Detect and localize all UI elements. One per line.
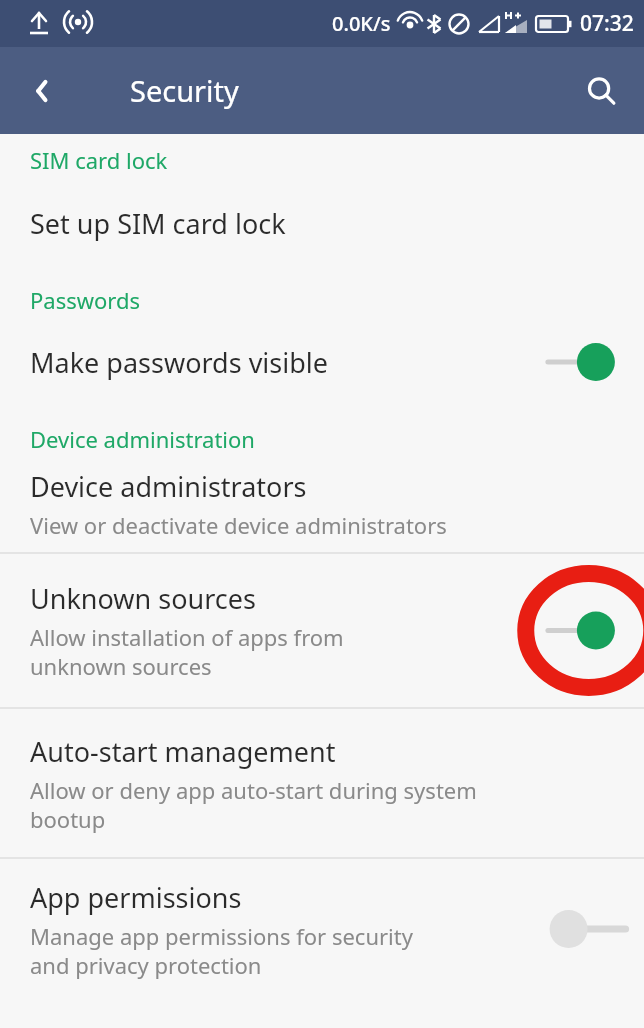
- staticText: View or deactivate device administrators: [30, 510, 447, 540]
- button[interactable]: Auto-start management: [0, 709, 644, 857]
- button[interactable]: Toggle off: [514, 859, 644, 999]
- button[interactable]: Set up SIM card lock: [0, 177, 644, 269]
- staticText: Unknown sources: [30, 580, 256, 617]
- staticText: Auto-start management: [30, 733, 336, 770]
- button[interactable]: Back: [14, 62, 72, 120]
- staticText: Device administration: [30, 424, 644, 454]
- staticText: Allow or deny app auto-start during syst…: [30, 775, 477, 834]
- staticText: SIM card lock: [30, 145, 644, 175]
- staticText: Make passwords visible: [30, 344, 329, 381]
- button[interactable]: Device administrators: [0, 456, 644, 552]
- button[interactable]: Unknown sources: [0, 554, 644, 707]
- staticText: Allow installation of apps from unknown …: [30, 622, 344, 681]
- button[interactable]: Make passwords visible: [0, 317, 644, 407]
- staticText: Manage app permissions for security and …: [30, 921, 413, 980]
- button[interactable]: App permissions: [0, 859, 644, 999]
- button[interactable]: Search: [572, 62, 630, 120]
- staticText: App permissions: [30, 879, 242, 916]
- staticText: 07:32: [580, 9, 634, 38]
- staticText: Device administrators: [30, 468, 307, 505]
- staticText: Security: [130, 71, 239, 110]
- staticText: 0.0K/s: [332, 10, 391, 37]
- button[interactable]: Toggle on: [514, 554, 644, 707]
- staticText: Passwords: [30, 285, 644, 315]
- staticText: Set up SIM card lock: [30, 205, 286, 242]
- button[interactable]: Toggle on: [514, 317, 644, 407]
